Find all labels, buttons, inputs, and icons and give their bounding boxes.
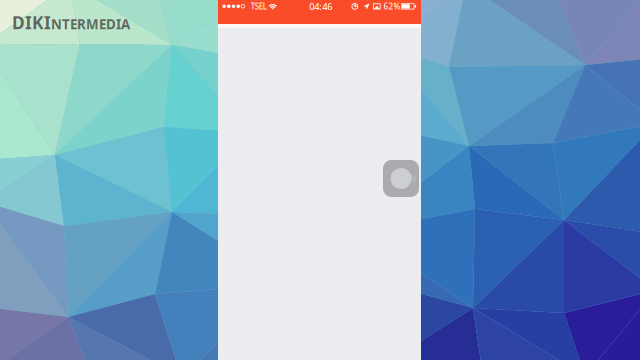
- staticText: NTERMEDIA: [51, 15, 130, 33]
- staticText: 62%: [383, 1, 400, 12]
- staticText: DIKI: [12, 11, 51, 34]
- button[interactable]: Loading: [383, 160, 419, 197]
- staticText: 04:46: [309, 0, 332, 12]
- staticText: TSEL: [251, 1, 267, 12]
